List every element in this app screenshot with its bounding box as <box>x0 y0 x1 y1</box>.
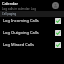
button[interactable]: Log Incoming Calls <box>0 14 64 26</box>
button[interactable]: Toggle <box>55 30 61 36</box>
button[interactable]: Log Missed Calls <box>0 38 64 50</box>
staticText: Log Outgoing Calls <box>3 30 39 35</box>
button[interactable]: Toggle <box>55 42 61 48</box>
button[interactable]: Log Outgoing Calls <box>0 26 64 38</box>
staticText: Log Incoming Calls <box>3 18 39 23</box>
staticText: Calendar <box>2 1 19 6</box>
staticText: Log calls in calendar: Log <box>2 7 37 11</box>
staticText: Cell paging <box>2 12 17 16</box>
staticText: Log Missed Calls <box>3 42 35 47</box>
button[interactable]: Toggle <box>55 18 61 24</box>
button[interactable]: Account <box>52 2 59 9</box>
